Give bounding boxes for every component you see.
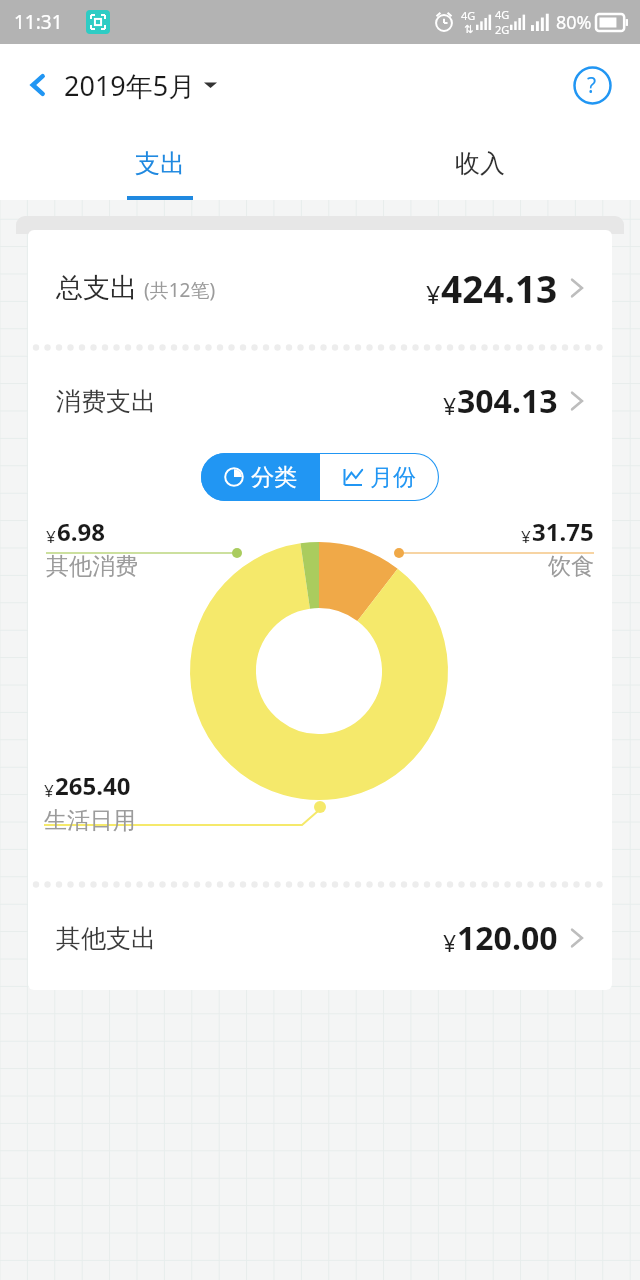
staticText: 饮食	[548, 552, 594, 581]
staticText: 304.13	[457, 379, 558, 423]
staticText: 120.00	[457, 916, 558, 960]
staticText: 424.13	[441, 263, 558, 313]
staticText: 支出	[135, 148, 185, 179]
staticText: 生活日用	[44, 806, 136, 835]
staticText: 4G	[495, 7, 510, 22]
button[interactable]: 消费支出	[28, 349, 612, 453]
staticText: 其他消费	[46, 552, 138, 581]
button[interactable]: 收入	[320, 126, 640, 200]
staticText: 265.40	[55, 769, 131, 802]
staticText: ¥	[46, 525, 56, 548]
button[interactable]: 分类	[201, 453, 320, 501]
button[interactable]: 支出	[0, 126, 320, 200]
staticText: ⇅	[464, 23, 474, 36]
staticText: ¥	[426, 277, 441, 311]
staticText: 31.75	[532, 515, 594, 548]
staticText: 消费支出	[56, 386, 156, 417]
staticText: 2019年5月	[64, 67, 196, 104]
staticText: 2G	[495, 22, 510, 37]
staticText: 其他支出	[56, 923, 156, 954]
other: Back	[18, 65, 58, 105]
staticText: ?	[587, 71, 597, 100]
staticText: ¥	[443, 927, 457, 958]
staticText: 4G	[461, 8, 476, 23]
staticText: 收入	[455, 148, 505, 179]
staticText: 11:31	[14, 9, 63, 35]
staticText: (共12笔)	[144, 277, 216, 303]
button[interactable]: Help	[570, 63, 614, 107]
staticText: ¥	[443, 390, 457, 421]
button[interactable]: 其他支出	[28, 886, 612, 990]
button[interactable]: Back	[18, 65, 217, 105]
staticText: 分类	[251, 463, 297, 492]
staticText: 6.98	[57, 515, 105, 548]
staticText: 80%	[556, 10, 592, 35]
staticText: 总支出	[56, 271, 137, 305]
staticText: 月份	[370, 463, 416, 492]
staticText: ¥	[44, 779, 54, 802]
button[interactable]: 总支出	[28, 230, 612, 346]
button[interactable]: 月份	[320, 453, 439, 501]
staticText: ¥	[521, 525, 531, 548]
